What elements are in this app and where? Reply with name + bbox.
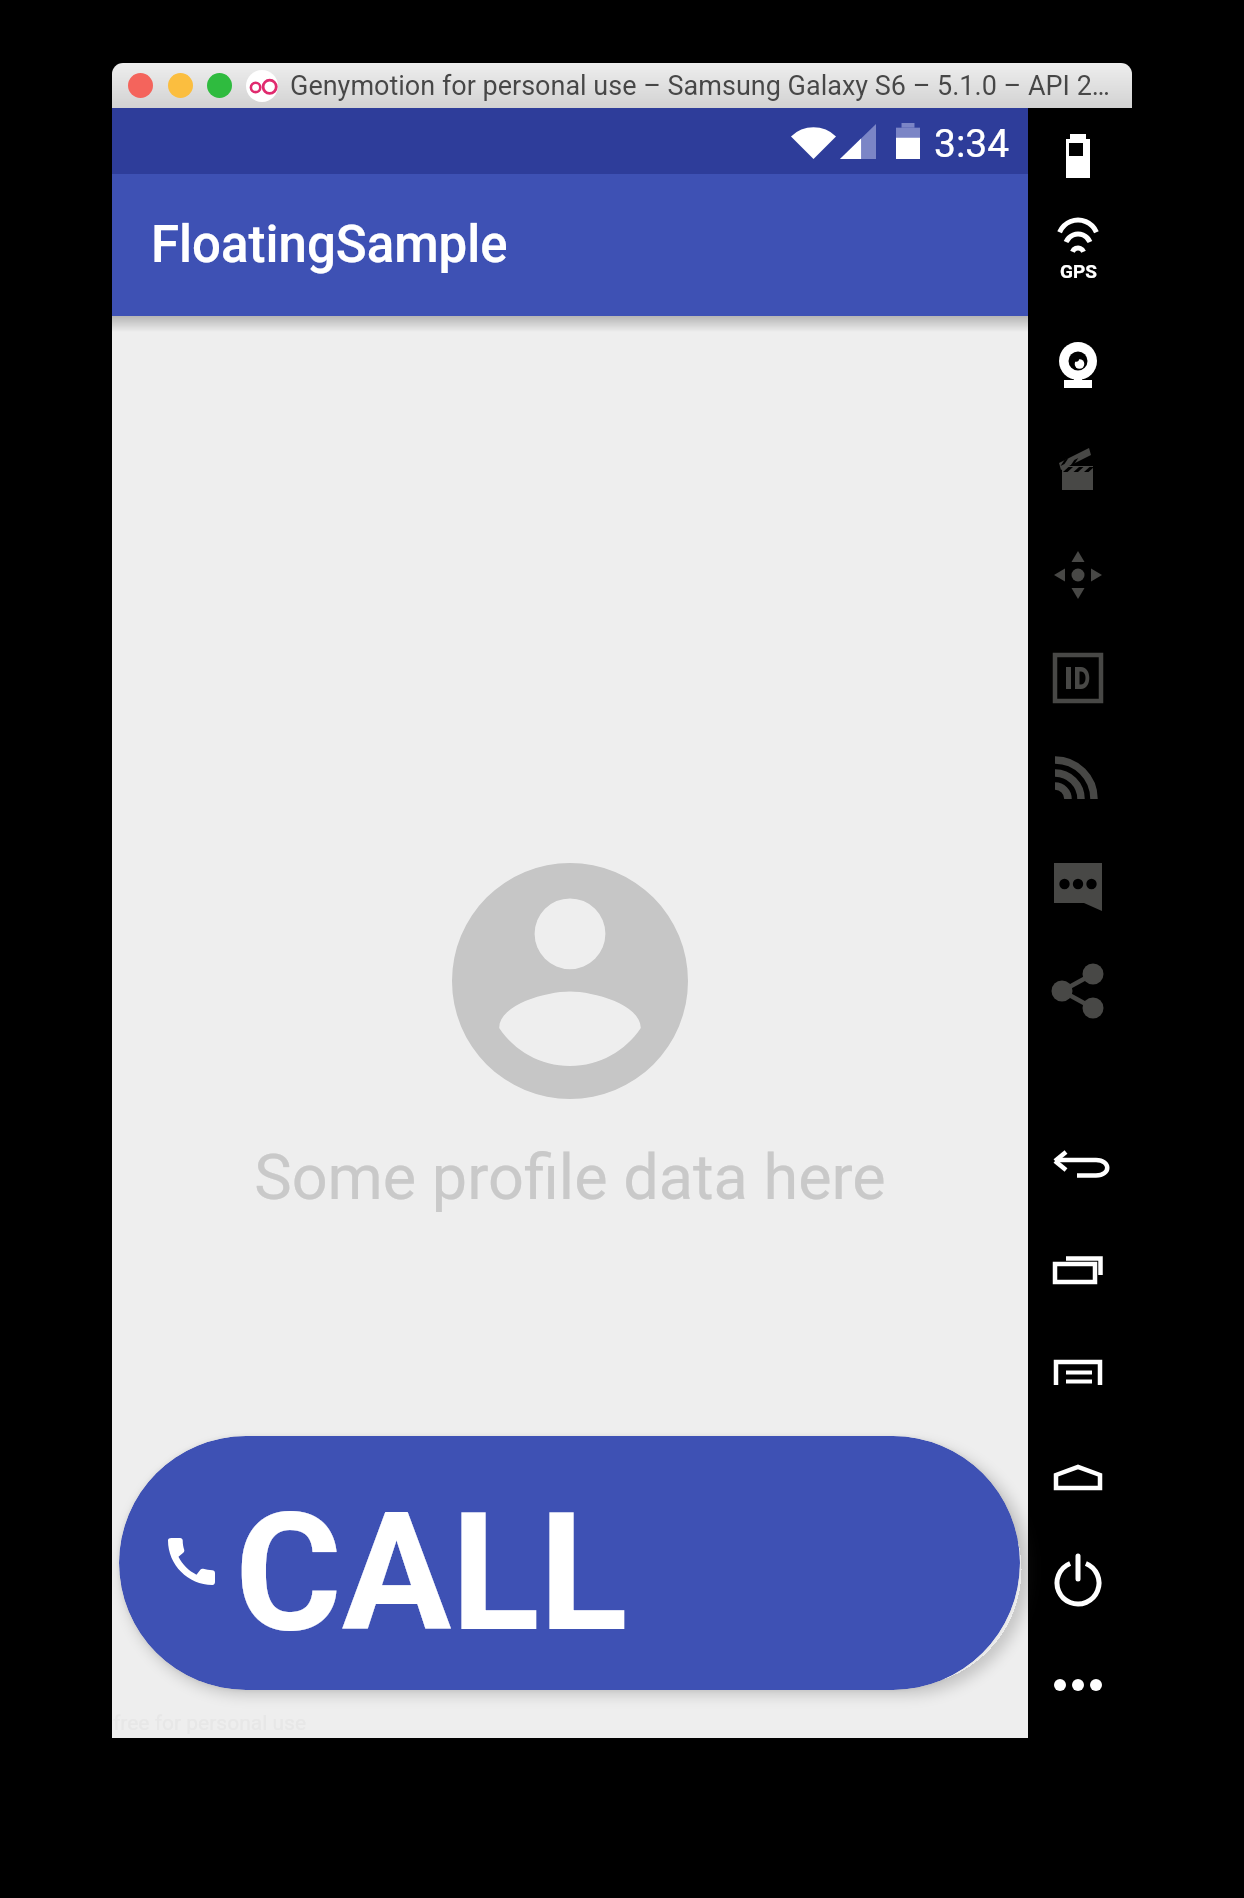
- staticText: GPS: [1060, 260, 1097, 282]
- button[interactable]: Close: [128, 73, 153, 98]
- staticText: Some profile data here: [254, 1141, 886, 1215]
- staticText: FloatingSample: [151, 215, 508, 275]
- staticText: Genymotion for personal use – Samsung Ga…: [290, 70, 1110, 102]
- button[interactable]: Zoom: [207, 73, 232, 98]
- button[interactable]: CALL: [119, 1436, 1020, 1690]
- staticText: 3:34: [934, 121, 1010, 167]
- staticText: CALL: [235, 1478, 628, 1669]
- button[interactable]: Minimise: [168, 73, 193, 98]
- button[interactable]: GPS: [1050, 236, 1106, 282]
